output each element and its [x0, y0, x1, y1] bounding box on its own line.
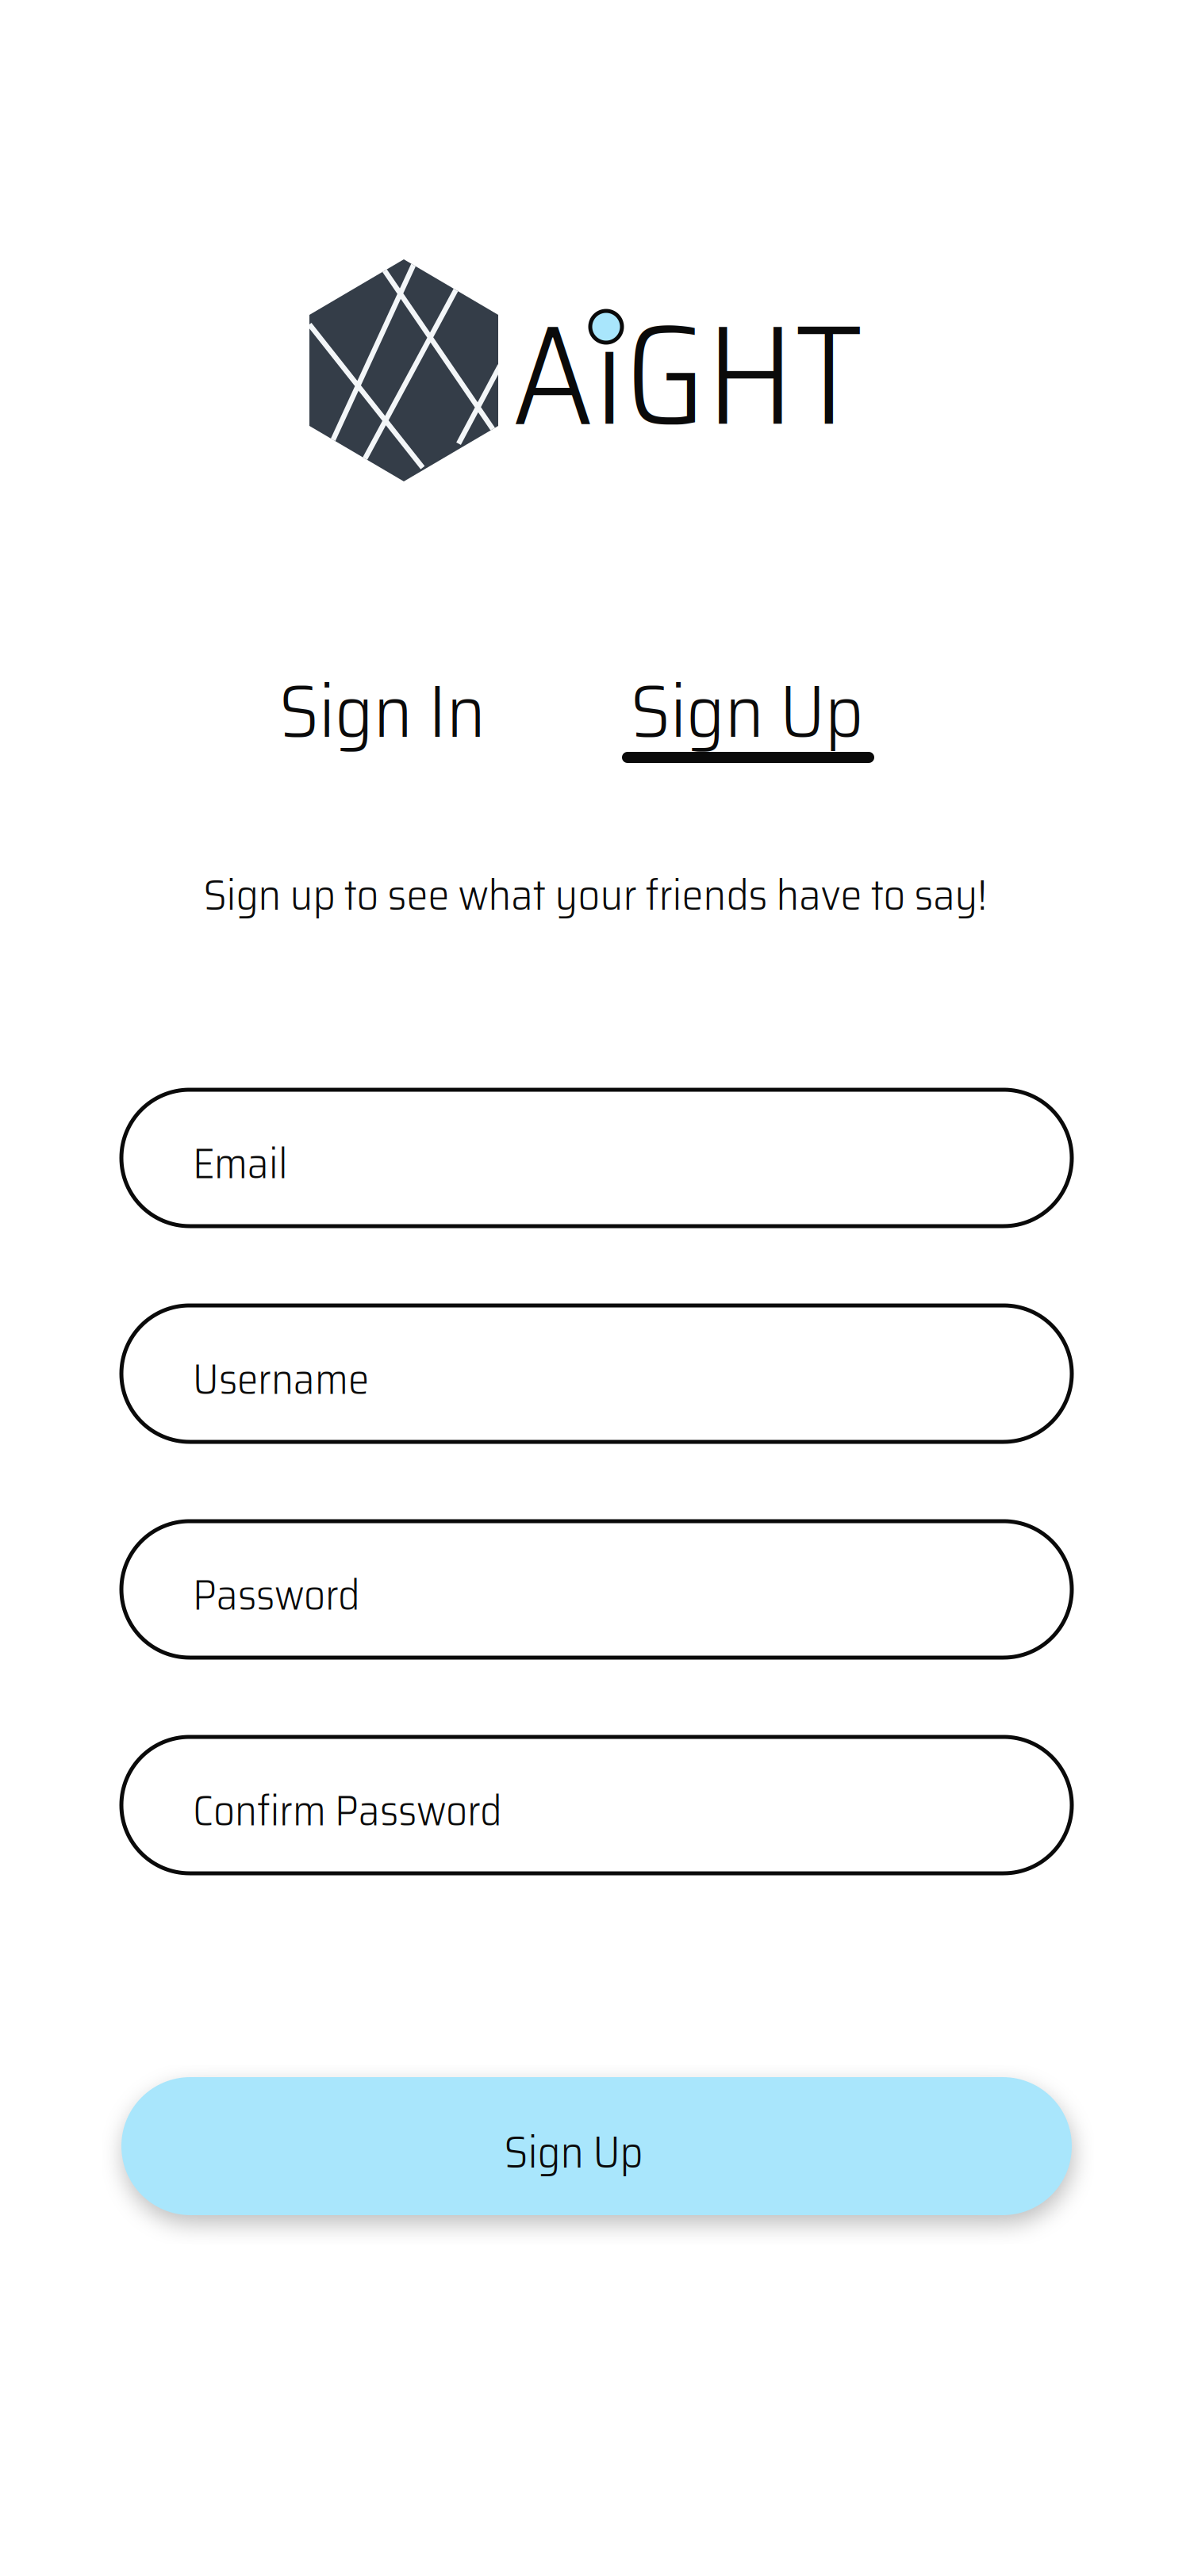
staticText: Sign In [279, 653, 486, 769]
staticText: Sign Up [504, 2117, 643, 2187]
staticText: Username [193, 1346, 369, 1412]
button[interactable]: Sign Up [121, 2077, 1072, 2215]
staticText: Sign Up [631, 653, 864, 769]
staticText: Password [193, 1562, 360, 1628]
staticText: AiGHT [512, 264, 864, 485]
button[interactable]: Sign Up [610, 635, 885, 817]
button[interactable]: Password [121, 1521, 1072, 1658]
staticText: Email [193, 1130, 288, 1197]
button[interactable]: Sign In [259, 635, 506, 787]
button[interactable]: Email [121, 1090, 1072, 1226]
button[interactable]: Confirm Password [121, 1737, 1072, 1873]
staticText: Confirm Password [193, 1777, 502, 1844]
button[interactable]: Username [121, 1305, 1072, 1442]
staticText: Sign up to see what your friends have to… [203, 861, 987, 929]
